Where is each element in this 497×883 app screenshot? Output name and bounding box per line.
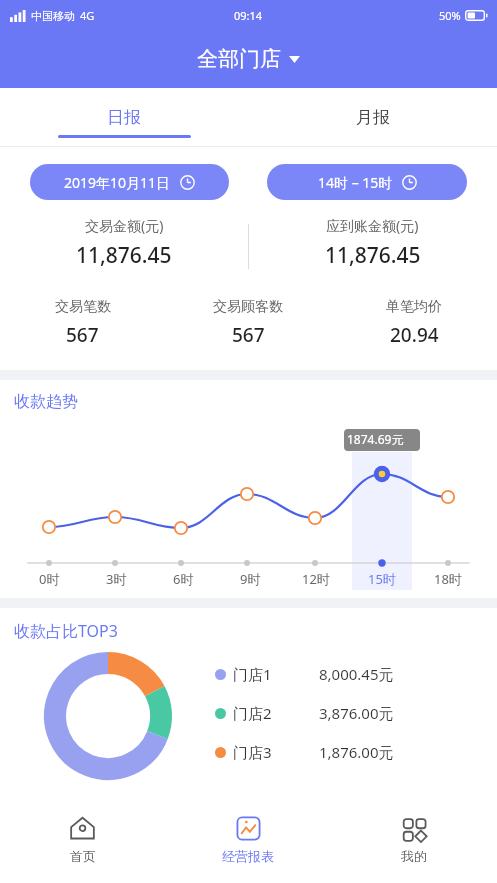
staticText: 全部门店 — [197, 46, 281, 72]
staticText: 6时 — [173, 570, 194, 588]
staticText: 交易笔数 — [55, 298, 111, 316]
staticText: 门店1 — [233, 664, 319, 684]
button[interactable]: 经营报表 — [165, 803, 331, 883]
button[interactable]: 月报 — [248, 88, 497, 146]
staticText: 3时 — [106, 570, 127, 588]
other: 经营报表 — [235, 815, 262, 842]
button[interactable]: 日报 — [0, 88, 248, 146]
other: 首页 — [69, 815, 96, 842]
staticText: 月报 — [356, 107, 390, 128]
staticText: 2019年10月11日 — [64, 173, 171, 192]
staticText: 首页 — [70, 848, 96, 864]
staticText: 1,876.00元 — [319, 742, 394, 762]
staticText: 567 — [66, 322, 99, 348]
staticText: 我的 — [401, 848, 427, 864]
other: 我的 — [401, 815, 428, 842]
button[interactable]: 2019年10月11日 — [30, 164, 229, 200]
staticText: 09:14 — [234, 8, 263, 23]
button[interactable]: 首页 — [0, 803, 165, 883]
staticText: 0时 — [39, 570, 60, 588]
staticText: 收款占比TOP3 — [14, 620, 118, 642]
staticText: 交易金额(元) — [85, 216, 164, 235]
staticText: 门店3 — [233, 742, 319, 762]
staticText: 50% — [439, 8, 461, 23]
staticText: 交易顾客数 — [213, 298, 283, 316]
staticText: 单笔均价 — [386, 298, 442, 316]
staticText: 12时 — [302, 570, 330, 588]
staticText: 日报 — [107, 107, 141, 128]
staticText: 4G — [80, 8, 95, 23]
staticText: 18时 — [434, 570, 462, 588]
staticText: 经营报表 — [222, 848, 274, 864]
staticText: 20.94 — [390, 322, 439, 348]
staticText: 14时 – 15时 — [318, 173, 393, 192]
staticText: 中国移动 — [31, 9, 75, 23]
staticText: 1874.69元 — [347, 431, 404, 447]
staticText: 9时 — [240, 570, 261, 588]
staticText: 8,000.45元 — [319, 664, 394, 684]
staticText: 11,876.45 — [325, 241, 421, 270]
button[interactable]: 14时 – 15时 — [267, 164, 467, 200]
button[interactable]: 我的 — [331, 803, 497, 883]
staticText: 15时 — [368, 570, 396, 588]
button[interactable]: 全部门店 — [187, 41, 310, 77]
staticText: 3,876.00元 — [319, 703, 394, 723]
staticText: 应到账金额(元) — [326, 216, 419, 235]
staticText: 收款趋势 — [14, 392, 78, 412]
staticText: 567 — [232, 322, 265, 348]
staticText: 门店2 — [233, 703, 319, 723]
staticText: 11,876.45 — [76, 241, 172, 270]
